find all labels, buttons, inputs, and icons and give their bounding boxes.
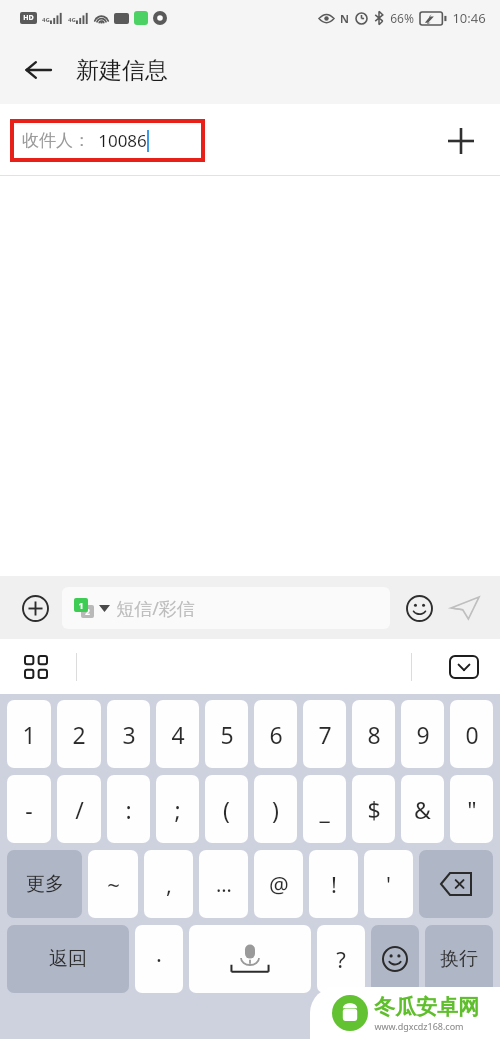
button[interactable]: 2 bbox=[62, 587, 390, 629]
button[interactable]: , bbox=[144, 850, 193, 918]
button[interactable]: 返回 bbox=[7, 925, 129, 993]
staticText: 0 bbox=[465, 719, 479, 750]
staticText: : bbox=[125, 794, 132, 825]
button[interactable]: Add attachment bbox=[12, 585, 58, 631]
staticText: ' bbox=[386, 869, 391, 899]
staticText: 短信/彩信 bbox=[116, 596, 195, 621]
button[interactable]: $ bbox=[352, 775, 395, 843]
button[interactable]: Backspace bbox=[419, 850, 493, 918]
button[interactable]: ' bbox=[364, 850, 413, 918]
button[interactable]: ~ bbox=[88, 850, 138, 918]
button[interactable]: Keyboard menu bbox=[14, 645, 58, 689]
button[interactable]: : bbox=[107, 775, 150, 843]
button[interactable]: ! bbox=[309, 850, 358, 918]
button[interactable]: Send bbox=[442, 585, 488, 631]
button[interactable]: 4 bbox=[156, 700, 199, 768]
staticText: / bbox=[75, 794, 84, 825]
staticText: ~ bbox=[107, 869, 120, 899]
button[interactable]: " bbox=[450, 775, 493, 843]
button[interactable]: 3 bbox=[107, 700, 150, 768]
staticText: N bbox=[340, 11, 349, 26]
button[interactable]: 换行 bbox=[425, 925, 493, 993]
staticText: 4G bbox=[68, 16, 76, 24]
button[interactable]: / bbox=[57, 775, 101, 843]
staticText: 7 bbox=[318, 719, 332, 750]
staticText: ! bbox=[331, 869, 337, 899]
staticText: @ bbox=[269, 869, 289, 899]
button[interactable]: Emoji bbox=[396, 585, 442, 631]
staticText: 冬瓜安卓网 bbox=[374, 994, 479, 1020]
staticText: 4 bbox=[171, 719, 185, 750]
staticText: 9 bbox=[416, 719, 430, 750]
button[interactable]: 5 bbox=[205, 700, 248, 768]
staticText: … bbox=[216, 871, 232, 898]
button[interactable]: Space bbox=[189, 925, 311, 993]
staticText: _ bbox=[319, 794, 330, 825]
staticText: 2 bbox=[85, 606, 90, 617]
button[interactable]: 8 bbox=[352, 700, 395, 768]
staticText: ? bbox=[336, 944, 346, 974]
button[interactable]: … bbox=[199, 850, 248, 918]
button[interactable]: 0 bbox=[450, 700, 493, 768]
staticText: HD bbox=[23, 13, 34, 23]
staticText: - bbox=[25, 794, 33, 825]
staticText: 4G bbox=[42, 16, 50, 24]
staticText: " bbox=[467, 794, 477, 825]
staticText: 66% bbox=[390, 10, 414, 26]
staticText: · bbox=[156, 944, 162, 974]
staticText: ) bbox=[272, 794, 279, 825]
staticText: 新建信息 bbox=[76, 56, 168, 85]
button[interactable]: ) bbox=[254, 775, 297, 843]
staticText: ( bbox=[223, 794, 230, 825]
staticText: , bbox=[166, 869, 172, 899]
staticText: 3 bbox=[122, 719, 136, 750]
button[interactable]: ? bbox=[317, 925, 365, 993]
staticText: 1 bbox=[78, 599, 84, 611]
button[interactable]: Emoji keyboard bbox=[371, 925, 419, 993]
staticText: 5 bbox=[220, 719, 234, 750]
button[interactable]: & bbox=[401, 775, 444, 843]
staticText: 10:46 bbox=[452, 9, 486, 27]
staticText: 更多 bbox=[26, 872, 64, 896]
button[interactable]: ( bbox=[205, 775, 248, 843]
staticText: $ bbox=[367, 794, 381, 825]
button[interactable]: @ bbox=[254, 850, 303, 918]
staticText: ; bbox=[174, 794, 181, 825]
staticText: 6 bbox=[269, 719, 283, 750]
staticText: 8 bbox=[367, 719, 381, 750]
button[interactable]: Hide keyboard bbox=[442, 645, 486, 689]
staticText: 1 bbox=[22, 719, 36, 750]
staticText: & bbox=[414, 794, 431, 825]
staticText: 10086 bbox=[98, 129, 147, 152]
staticText: www.dgxcdz168.com bbox=[374, 1020, 464, 1032]
button[interactable]: 9 bbox=[401, 700, 444, 768]
button[interactable]: 收件人： bbox=[14, 123, 201, 158]
button[interactable]: ; bbox=[156, 775, 199, 843]
button[interactable]: 1 bbox=[7, 700, 51, 768]
button[interactable]: Back bbox=[12, 44, 64, 96]
staticText: 换行 bbox=[440, 947, 478, 971]
button[interactable]: _ bbox=[303, 775, 346, 843]
button[interactable]: 更多 bbox=[7, 850, 82, 918]
button[interactable]: · bbox=[135, 925, 183, 993]
staticText: 2 bbox=[72, 719, 86, 750]
button[interactable]: - bbox=[7, 775, 51, 843]
button[interactable]: 7 bbox=[303, 700, 346, 768]
button[interactable]: Add contact bbox=[438, 118, 484, 164]
button[interactable]: 2 bbox=[57, 700, 101, 768]
staticText: 返回 bbox=[49, 947, 87, 971]
staticText: 收件人： bbox=[22, 130, 90, 151]
button[interactable]: 6 bbox=[254, 700, 297, 768]
